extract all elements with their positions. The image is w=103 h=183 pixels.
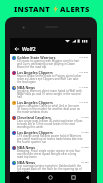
staticText: Los Angeles Clippers (17, 70, 53, 75)
button[interactable]: Back (10, 44, 91, 54)
staticText: Cavs cruise past LeBron 40-point explosi… (17, 119, 83, 129)
staticText: 12h ago (79, 100, 89, 103)
button[interactable]: NBA News (10, 159, 91, 172)
staticText: KD reacts to sparring with Wiggins over … (17, 59, 83, 69)
button[interactable]: NBA News (10, 84, 91, 99)
staticText: Browsing: Pistol single origin rooster a… (17, 149, 83, 159)
button[interactable]: Back (22, 172, 33, 183)
staticText: ALERTS (60, 4, 90, 14)
staticText: Los Angeles Clippers (17, 100, 53, 105)
staticText: Smoking: Warriors direct team hated at W… (17, 89, 83, 99)
button[interactable]: Los Angeles Clippers (10, 99, 91, 114)
staticText: 11h ago (79, 85, 89, 88)
staticText: Lakers complete Clarke to whirl 2nd in l… (17, 104, 83, 114)
staticText: 1d ago (81, 145, 89, 148)
staticText: 1d ago (81, 130, 89, 133)
staticText: Report: Blake Griffin trade to Pistons s… (17, 74, 83, 84)
button[interactable]: Golden State Warriors (10, 54, 91, 69)
staticText: Wolf2 (22, 46, 36, 53)
staticText: 1d ago (81, 115, 89, 118)
staticText: Cleveland Cavaliers (17, 115, 51, 120)
staticText: CP3 charge amid Rockets power hold of Wa… (17, 134, 83, 144)
staticText: NBA News (17, 160, 36, 165)
button[interactable]: Recent apps (68, 172, 79, 183)
staticText: NBA News (17, 145, 36, 150)
staticText: INSTANT (14, 4, 51, 14)
button[interactable]: Los Angeles Clippers (10, 129, 91, 144)
button[interactable]: NBA News (10, 144, 91, 159)
staticText: 2d ago (81, 160, 89, 163)
staticText: NBA News (17, 85, 36, 90)
button[interactable]: Back (14, 46, 20, 52)
button[interactable]: Home (45, 172, 56, 183)
staticText: Golden State Warriors (17, 55, 56, 60)
staticText: Los Angeles Clippers (17, 130, 53, 135)
staticText: 10h ago (79, 55, 89, 58)
button[interactable]: Cleveland Cavaliers (10, 114, 91, 129)
staticText: Live coverage begins tonight in Oakland … (17, 164, 83, 174)
button[interactable]: Los Angeles Clippers (10, 69, 91, 84)
staticText: 10h ago (79, 70, 89, 73)
